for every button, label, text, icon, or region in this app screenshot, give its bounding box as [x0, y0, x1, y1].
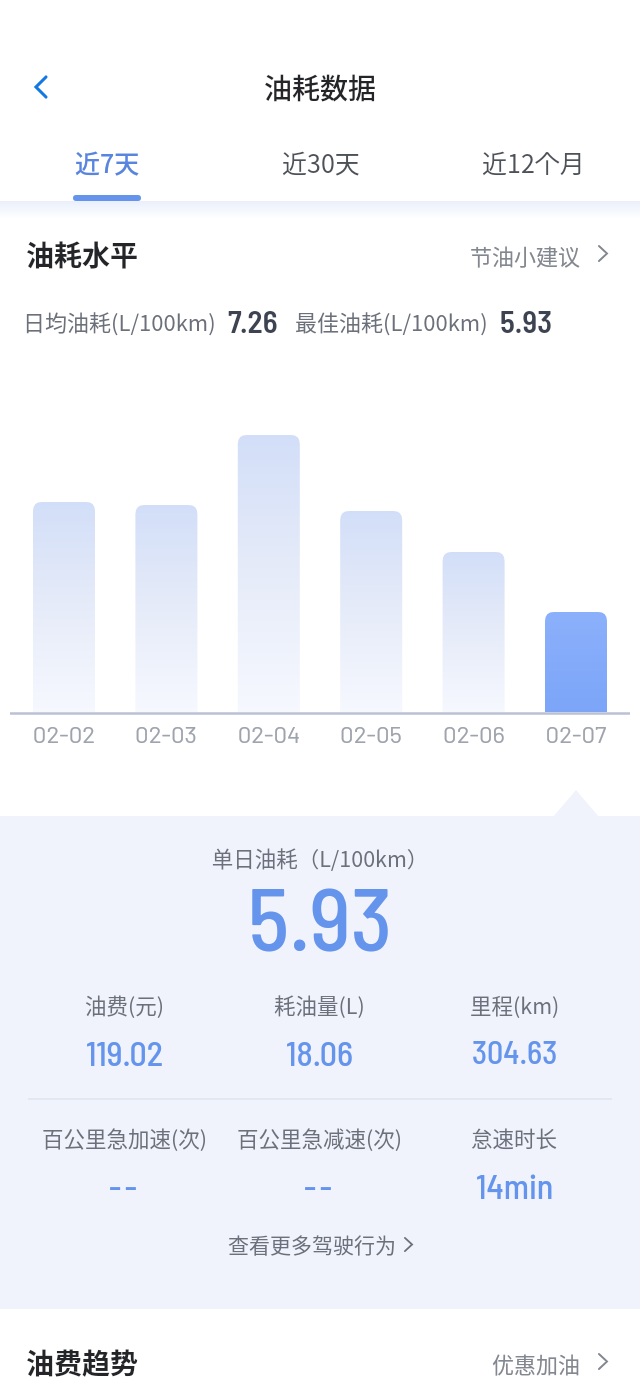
staticText: 节油小建议	[470, 239, 581, 271]
staticText: 02-07	[525, 719, 627, 748]
button[interactable]: 近7天	[0, 144, 214, 178]
staticText: 油耗水平	[26, 234, 139, 275]
staticText: 油耗数据	[0, 67, 640, 108]
staticText: 里程(km)	[470, 989, 560, 1020]
staticText: 18.06	[286, 1032, 353, 1073]
staticText: 耗油量(L)	[274, 989, 365, 1020]
staticText: 5.93	[500, 302, 553, 339]
staticText: 7.26	[228, 302, 278, 339]
staticText: 近7天	[75, 144, 140, 178]
staticText: --	[304, 1165, 336, 1206]
button[interactable]: 近12个月	[427, 144, 640, 178]
staticText: --	[109, 1165, 141, 1206]
staticText: 5.93	[0, 863, 640, 969]
staticText: 119.02	[86, 1032, 164, 1073]
staticText: 02-05	[320, 719, 422, 748]
staticText: 近30天	[282, 144, 360, 178]
staticText: 百公里急减速(次)	[237, 1122, 403, 1153]
button[interactable]: 节油小建议	[470, 239, 608, 271]
button[interactable]: 近30天	[214, 144, 427, 178]
staticText: 02-04	[218, 719, 320, 748]
staticText: 油费(元)	[85, 989, 165, 1020]
button[interactable]: Back	[8, 59, 64, 115]
staticText: 304.63	[472, 1032, 558, 1070]
button[interactable]: 优惠加油	[492, 1347, 608, 1379]
staticText: 日均油耗(L/100km)	[23, 305, 216, 337]
staticText: 14min	[476, 1165, 554, 1206]
staticText: 单日油耗（L/100km）	[0, 842, 640, 873]
staticText: 油费趋势	[26, 1342, 139, 1383]
staticText: 最佳油耗(L/100km)	[295, 305, 488, 337]
button[interactable]: 查看更多驾驶行为	[0, 1229, 640, 1259]
staticText: 02-03	[115, 719, 217, 748]
staticText: 百公里急加速(次)	[42, 1122, 208, 1153]
staticText: 怠速时长	[471, 1122, 558, 1153]
staticText: 近12个月	[482, 144, 585, 178]
staticText: 02-02	[13, 719, 115, 748]
staticText: 查看更多驾驶行为	[228, 1229, 396, 1259]
staticText: 02-06	[423, 719, 525, 748]
staticText: 优惠加油	[492, 1347, 581, 1379]
